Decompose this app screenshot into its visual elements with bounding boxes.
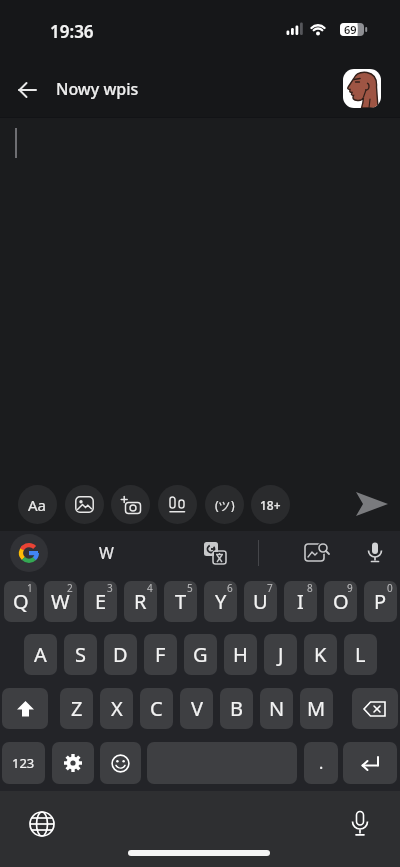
button[interactable]: A xyxy=(24,634,57,675)
staticText: 9 xyxy=(347,581,353,595)
staticText: C xyxy=(150,695,163,722)
staticText: . xyxy=(319,752,324,774)
staticText: Z xyxy=(71,695,83,722)
button[interactable]: L xyxy=(344,634,377,675)
staticText: 7 xyxy=(267,581,273,595)
button[interactable]: V xyxy=(180,688,213,729)
button[interactable]: X xyxy=(100,688,133,729)
staticText: W xyxy=(51,588,70,615)
staticText: N xyxy=(269,695,285,722)
button[interactable] xyxy=(158,485,197,524)
staticText: 4 xyxy=(147,581,153,595)
staticText: B xyxy=(230,695,243,722)
button[interactable]: E xyxy=(84,581,117,622)
button[interactable] xyxy=(340,804,380,844)
staticText: 1 xyxy=(27,581,33,595)
staticText: 18+ xyxy=(260,497,281,513)
button[interactable]: Z xyxy=(60,688,93,729)
button[interactable] xyxy=(298,536,336,570)
staticText: O xyxy=(333,588,349,615)
button[interactable]: T xyxy=(164,581,197,622)
staticText: K xyxy=(314,641,327,668)
button[interactable]: W xyxy=(44,581,77,622)
button[interactable]: G xyxy=(184,634,217,675)
button[interactable]: (ツ) xyxy=(205,485,244,524)
staticText: R xyxy=(134,588,147,615)
staticText: 5 xyxy=(187,581,193,595)
staticText: 8 xyxy=(307,581,313,595)
button[interactable]: U xyxy=(244,581,277,622)
staticText: J xyxy=(278,641,284,668)
button[interactable]: Aa xyxy=(18,485,57,524)
staticText: V xyxy=(191,695,203,722)
staticText: A xyxy=(34,641,47,668)
staticText: 123 xyxy=(12,754,35,772)
staticText: F xyxy=(155,641,166,668)
button[interactable] xyxy=(352,484,392,524)
staticText: I xyxy=(297,588,304,615)
button[interactable] xyxy=(65,485,104,524)
staticText: 19:36 xyxy=(50,20,94,42)
staticText: T xyxy=(175,588,187,615)
staticText: 6 xyxy=(227,581,233,595)
button[interactable] xyxy=(10,534,48,572)
staticText: E xyxy=(95,588,107,615)
button[interactable]: . xyxy=(304,742,338,784)
button[interactable] xyxy=(343,69,381,108)
button[interactable] xyxy=(100,742,141,784)
button[interactable] xyxy=(22,804,62,844)
staticText: 3 xyxy=(107,581,113,595)
staticText: U xyxy=(253,588,268,615)
staticText: 69 xyxy=(344,22,357,34)
staticText: 0 xyxy=(387,581,393,595)
button[interactable]: H xyxy=(224,634,257,675)
button[interactable]: C xyxy=(140,688,173,729)
button[interactable] xyxy=(52,742,94,784)
button[interactable]: 18+ xyxy=(251,485,290,524)
staticText: H xyxy=(233,641,248,668)
button[interactable]: I xyxy=(284,581,317,622)
button[interactable]: W xyxy=(60,534,152,572)
button[interactable] xyxy=(352,688,398,729)
staticText: W xyxy=(99,542,114,564)
button[interactable] xyxy=(8,70,48,110)
button[interactable]: R xyxy=(124,581,157,622)
staticText: G xyxy=(193,641,208,668)
staticText: X xyxy=(111,695,123,722)
button[interactable]: J xyxy=(264,634,297,675)
staticText: Y xyxy=(215,588,227,615)
staticText: 2 xyxy=(67,581,73,595)
staticText: Aa xyxy=(28,495,47,515)
button[interactable]: S xyxy=(64,634,97,675)
button[interactable]: K xyxy=(304,634,337,675)
button[interactable] xyxy=(358,536,392,570)
staticText: (ツ) xyxy=(215,497,235,513)
button[interactable]: F xyxy=(144,634,177,675)
staticText: M xyxy=(307,695,326,722)
button[interactable]: N xyxy=(260,688,293,729)
button[interactable] xyxy=(343,742,397,784)
button[interactable]: 123 xyxy=(2,742,45,784)
staticText: Nowy wpis xyxy=(56,78,139,100)
button[interactable]: P xyxy=(364,581,397,622)
button[interactable]: B xyxy=(220,688,253,729)
button[interactable] xyxy=(196,536,234,570)
button[interactable]: Q xyxy=(4,581,37,622)
button[interactable]: Y xyxy=(204,581,237,622)
button[interactable] xyxy=(2,688,48,729)
button[interactable]: D xyxy=(104,634,137,675)
button[interactable] xyxy=(111,485,150,524)
staticText: D xyxy=(113,641,128,668)
button[interactable]: O xyxy=(324,581,357,622)
staticText: P xyxy=(374,588,387,615)
staticText: Q xyxy=(13,588,29,615)
staticText: L xyxy=(355,641,366,668)
button[interactable]: M xyxy=(300,688,333,729)
staticText: S xyxy=(75,641,86,668)
